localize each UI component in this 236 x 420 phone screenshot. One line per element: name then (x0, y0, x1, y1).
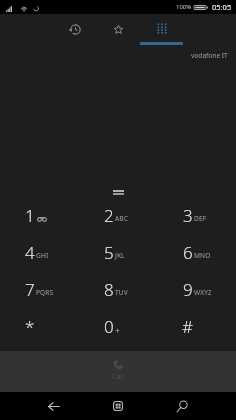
staticText: + (115, 324, 121, 336)
staticText: 0 (104, 315, 114, 338)
staticText: 1 (25, 204, 35, 227)
button[interactable]: Back (40, 392, 68, 420)
staticText: ABC (115, 214, 128, 223)
button[interactable]: 1 (0, 197, 78, 234)
staticText: WXYZ (194, 288, 211, 297)
staticText: 9 (183, 278, 193, 301)
staticText: # (182, 315, 193, 338)
staticText: vodafone IT (191, 51, 228, 60)
button[interactable]: 8 (78, 271, 157, 308)
staticText: MNO (194, 251, 211, 260)
button[interactable]: Favorites (100, 14, 135, 44)
staticText: 05:05 (212, 2, 232, 12)
button[interactable]: 7 (0, 271, 78, 308)
button[interactable]: Recents (58, 14, 93, 44)
button[interactable]: 0 (78, 308, 157, 345)
staticText: 3 (183, 204, 193, 227)
staticText: Call (112, 372, 124, 382)
staticText: PQRS (36, 288, 53, 297)
staticText: 4 (25, 241, 35, 264)
staticText: 5 (104, 241, 114, 264)
staticText: 8 (104, 278, 114, 301)
button[interactable]: 6 (157, 234, 236, 271)
staticText: JKL (115, 251, 125, 260)
button[interactable]: Search (168, 392, 196, 420)
button[interactable]: 4 (0, 234, 78, 271)
button[interactable]: 2 (78, 197, 157, 234)
button[interactable]: 9 (157, 271, 236, 308)
button[interactable]: Dialpad (140, 14, 183, 45)
button[interactable]: # (157, 308, 236, 345)
staticText: 100% (176, 3, 192, 11)
button[interactable]: 5 (78, 234, 157, 271)
button[interactable]: 3 (157, 197, 236, 234)
button[interactable]: Home (104, 392, 132, 420)
staticText: DEF (194, 214, 207, 223)
button[interactable]: * (0, 308, 78, 345)
staticText: 6 (183, 241, 193, 264)
staticText: 2 (104, 204, 114, 227)
staticText: TUV (115, 288, 128, 297)
staticText: * (25, 315, 35, 338)
staticText: 7 (25, 278, 35, 301)
staticText: GHI (36, 251, 49, 260)
